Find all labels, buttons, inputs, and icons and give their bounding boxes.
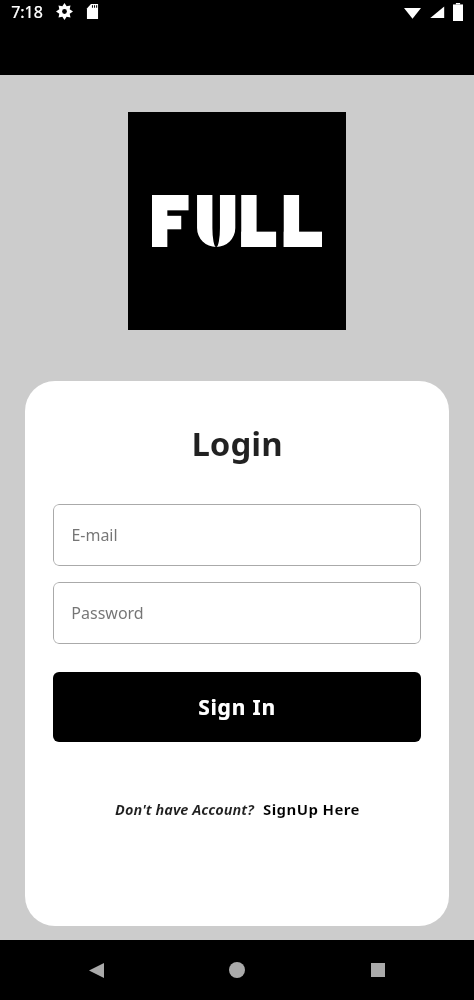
button[interactable]: SignUp Here [263, 799, 360, 819]
staticText: Sign In [198, 693, 276, 722]
staticText: 7:18 [11, 1, 43, 23]
staticText: Password [71, 602, 144, 624]
staticText: E-mail [71, 524, 118, 546]
button[interactable]: Back [78, 952, 114, 988]
staticText: Login [191, 421, 283, 466]
button[interactable]: E-mail [53, 504, 421, 566]
button[interactable]: Password [53, 582, 421, 644]
staticText: SignUp Here [263, 799, 360, 819]
button[interactable]: Recents [360, 952, 396, 988]
button[interactable]: Home [219, 952, 255, 988]
staticText: Don't have Account? [115, 799, 254, 819]
button[interactable]: Sign In [53, 672, 421, 742]
